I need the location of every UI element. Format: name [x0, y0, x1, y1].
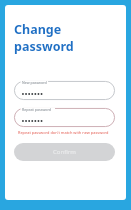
button[interactable]: Confirm — [14, 143, 115, 161]
button[interactable]: New password — [14, 81, 115, 100]
staticText: Repeat password — [22, 107, 52, 112]
staticText: Change — [14, 21, 62, 38]
staticText: Repeat password don't match with new pas… — [18, 130, 109, 135]
staticText: Confirm — [53, 148, 76, 156]
staticText: New password — [22, 80, 47, 85]
button[interactable]: Repeat password — [14, 108, 115, 127]
staticText: password — [14, 38, 74, 55]
